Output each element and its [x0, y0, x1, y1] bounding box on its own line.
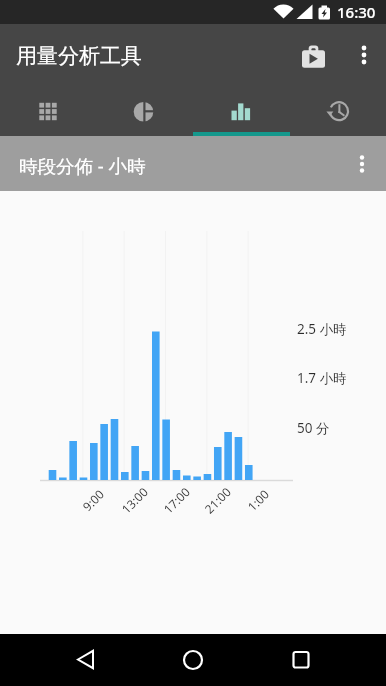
button[interactable] [0, 86, 96, 136]
staticText: 13:00 [118, 483, 151, 517]
staticText: 50 分 [297, 419, 330, 437]
button[interactable] [172, 638, 214, 680]
button[interactable] [96, 86, 192, 136]
button[interactable] [280, 638, 322, 680]
staticText: 2.5 小時 [297, 320, 347, 338]
button[interactable] [345, 36, 383, 74]
button[interactable] [289, 86, 386, 136]
button[interactable] [192, 86, 289, 136]
staticText: 21:00 [201, 483, 234, 517]
button[interactable] [65, 638, 107, 680]
button[interactable] [343, 145, 381, 183]
staticText: 9:00 [79, 486, 107, 514]
staticText: 用量分析工具 [16, 43, 142, 69]
staticText: 17:00 [160, 483, 193, 517]
button[interactable] [294, 38, 332, 76]
staticText: 1.7 小時 [297, 369, 347, 387]
staticText: 時段分佈 - 小時 [19, 153, 146, 178]
staticText: 16:30 [337, 2, 376, 22]
staticText: 1:00 [244, 486, 272, 514]
